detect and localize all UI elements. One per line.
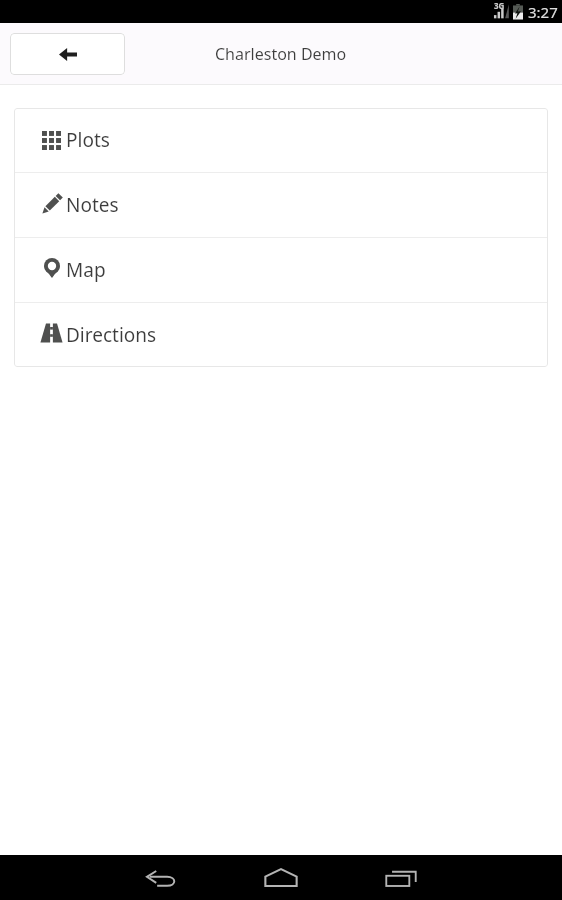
staticText: Charleston Demo [215,43,347,65]
button[interactable]: Map [14,238,548,302]
staticText: Directions [66,322,157,348]
button[interactable]: Directions [14,303,548,367]
button[interactable]: Recents [341,855,461,900]
button[interactable]: Back [10,33,125,75]
staticText: 3:27 [528,2,558,22]
staticText: 3G [494,0,505,11]
button[interactable]: Notes [14,173,548,237]
button[interactable]: Plots [14,108,548,172]
staticText: Notes [66,192,119,218]
staticText: Plots [66,127,110,153]
button[interactable]: Back [101,855,221,900]
button[interactable]: Home [221,855,341,900]
staticText: Map [66,257,106,283]
